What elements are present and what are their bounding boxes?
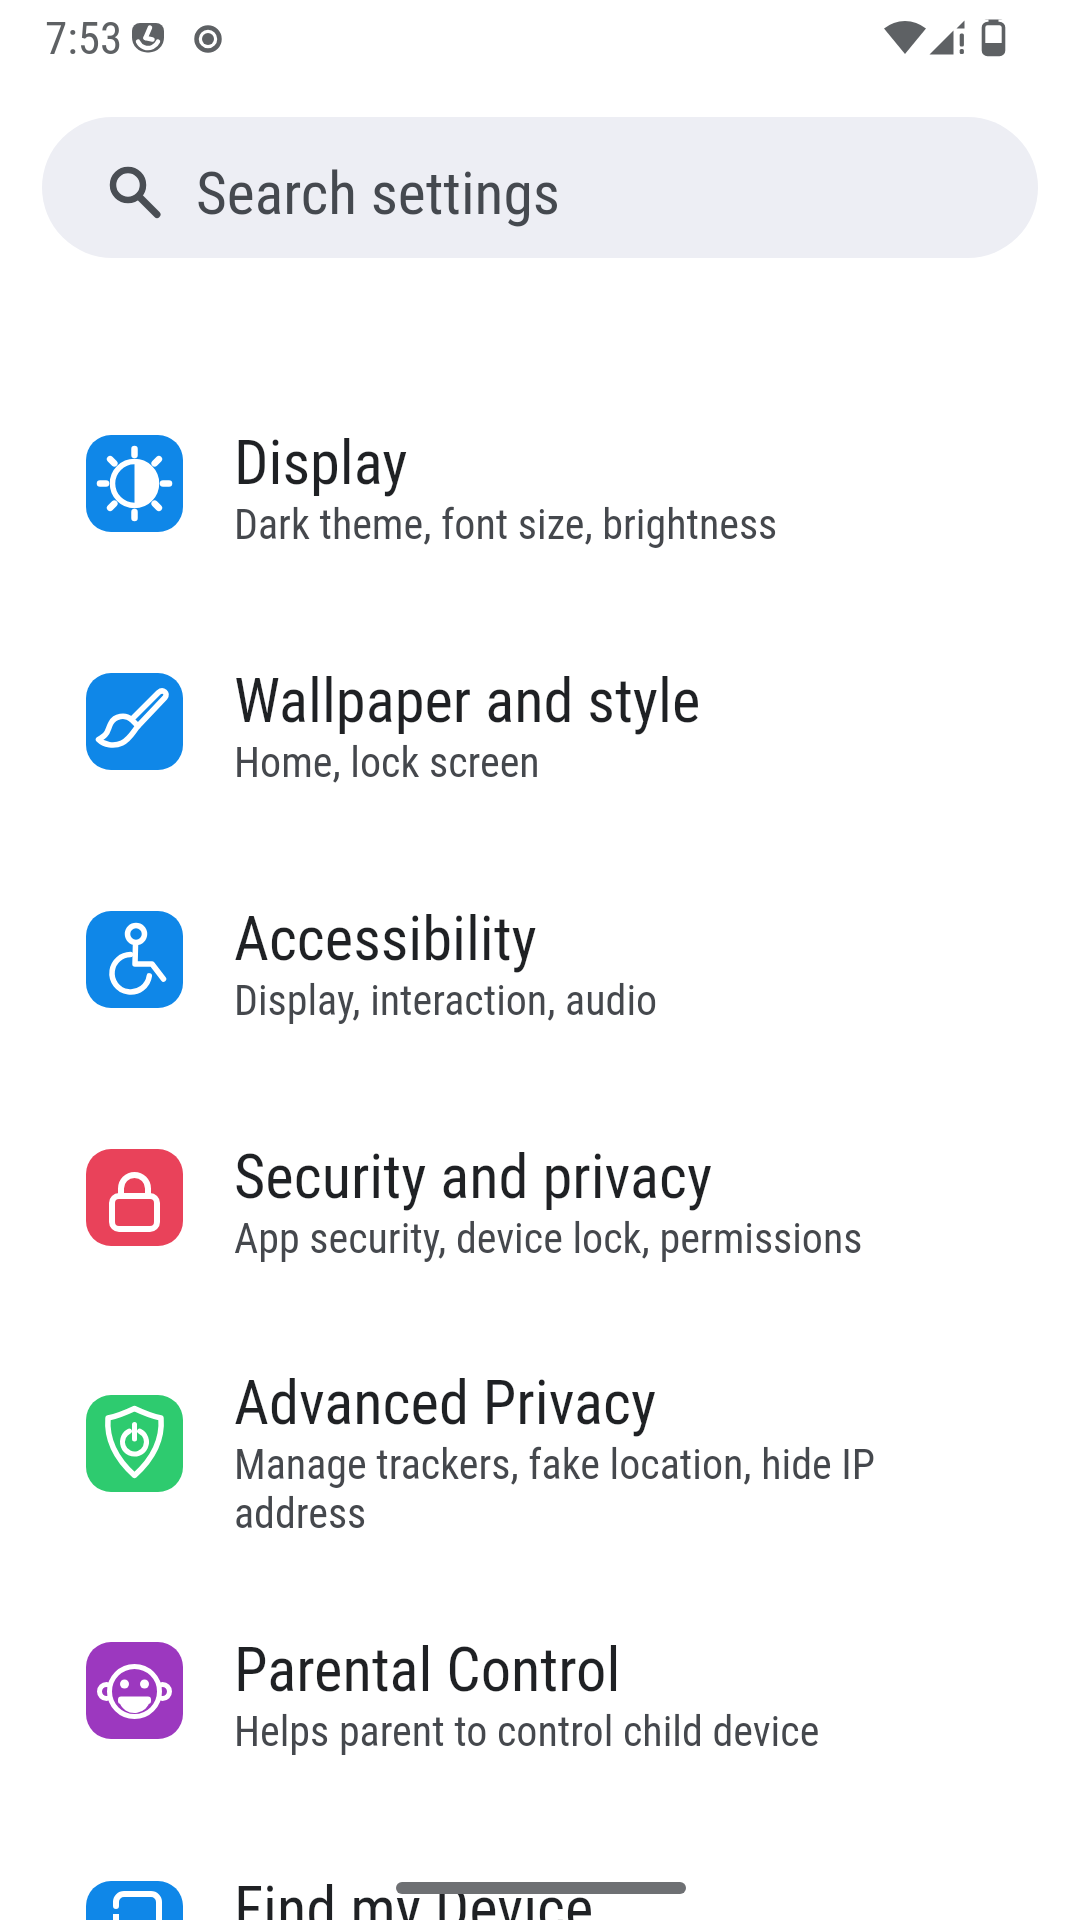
staticText: Manage trackers, fake location, hide IP …	[234, 1440, 876, 1538]
staticText: Parental Control	[234, 1635, 621, 1706]
button[interactable]: Search settings	[42, 117, 1038, 258]
staticText: Dark theme, font size, brightness	[234, 500, 778, 549]
staticText: Display	[234, 428, 408, 499]
button[interactable]: Advanced Privacy	[0, 1325, 1080, 1577]
staticText: 7:53	[45, 12, 123, 65]
staticText: Search settings	[196, 159, 560, 229]
button[interactable]: Wallpaper and style	[0, 603, 1080, 843]
staticText: App security, device lock, permissions	[234, 1214, 863, 1263]
staticText: Security and privacy	[234, 1142, 713, 1213]
staticText: Helps parent to control child device	[234, 1707, 820, 1756]
staticText: Home, lock screen	[234, 738, 540, 787]
button[interactable]: Security and privacy	[0, 1079, 1080, 1319]
button[interactable]: Display	[0, 365, 1080, 605]
staticText: Accessibility	[234, 904, 537, 975]
button[interactable]: Parental Control	[0, 1572, 1080, 1812]
staticText: Display, interaction, audio	[234, 976, 658, 1025]
staticText: Wallpaper and style	[234, 666, 701, 737]
button[interactable]: Find my Device	[0, 1811, 1080, 1920]
staticText: Find my Device	[234, 1874, 594, 1920]
button[interactable]: Accessibility	[0, 841, 1080, 1081]
staticText: Advanced Privacy	[234, 1368, 657, 1439]
